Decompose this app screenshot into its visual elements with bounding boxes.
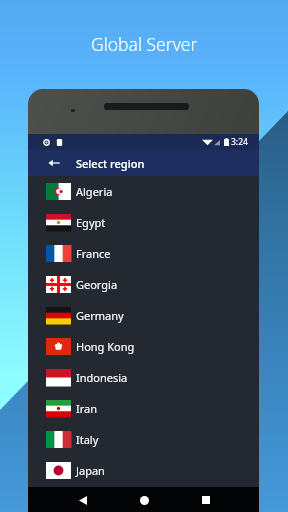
button[interactable]: Back: [72, 489, 94, 511]
button[interactable]: France: [28, 238, 259, 269]
button[interactable]: Home: [133, 489, 155, 511]
button[interactable]: Recents: [195, 489, 217, 511]
button[interactable]: Back: [41, 150, 67, 176]
staticText: Georgia: [76, 277, 118, 292]
staticText: Italy: [76, 432, 99, 447]
staticText: Global Server: [91, 32, 198, 56]
staticText: Indonesia: [76, 370, 128, 385]
button[interactable]: Egypt: [28, 207, 259, 238]
staticText: Iran: [76, 401, 98, 416]
staticText: Algeria: [76, 184, 113, 199]
staticText: Hong Kong: [76, 339, 135, 354]
button[interactable]: Algeria: [28, 176, 259, 207]
button[interactable]: Hong Kong: [28, 331, 259, 362]
button[interactable]: Germany: [28, 300, 259, 331]
staticText: France: [76, 246, 111, 261]
button[interactable]: Georgia: [28, 269, 259, 300]
button[interactable]: Japan: [28, 455, 259, 486]
button[interactable]: Iran: [28, 393, 259, 424]
staticText: Japan: [76, 463, 105, 478]
staticText: Select region: [76, 156, 145, 171]
staticText: 3:24: [231, 136, 248, 148]
button[interactable]: Italy: [28, 424, 259, 455]
staticText: Egypt: [76, 215, 106, 230]
button[interactable]: Indonesia: [28, 362, 259, 393]
staticText: Germany: [76, 308, 124, 323]
